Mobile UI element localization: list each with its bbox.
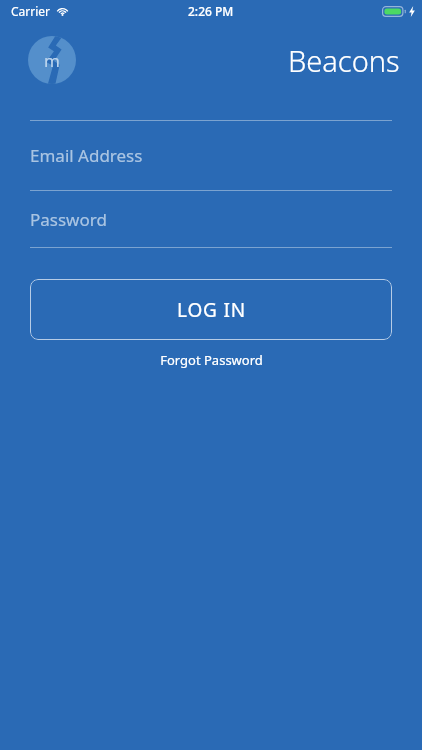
staticText: Beacons xyxy=(288,41,400,80)
staticText: Email Address xyxy=(30,144,143,167)
staticText: Password xyxy=(30,208,107,231)
staticText: m xyxy=(44,49,60,72)
staticText: Forgot Password xyxy=(160,351,263,369)
staticText: Carrier xyxy=(11,3,51,19)
staticText: LOG IN xyxy=(177,297,246,323)
other: Beacons logo xyxy=(28,36,76,84)
button[interactable]: Forgot Password xyxy=(30,347,392,373)
button[interactable]: Email Address xyxy=(30,121,392,190)
staticText: 2:26 PM xyxy=(188,3,234,19)
button[interactable]: LOG IN xyxy=(30,279,392,340)
button[interactable]: Password xyxy=(30,191,392,247)
